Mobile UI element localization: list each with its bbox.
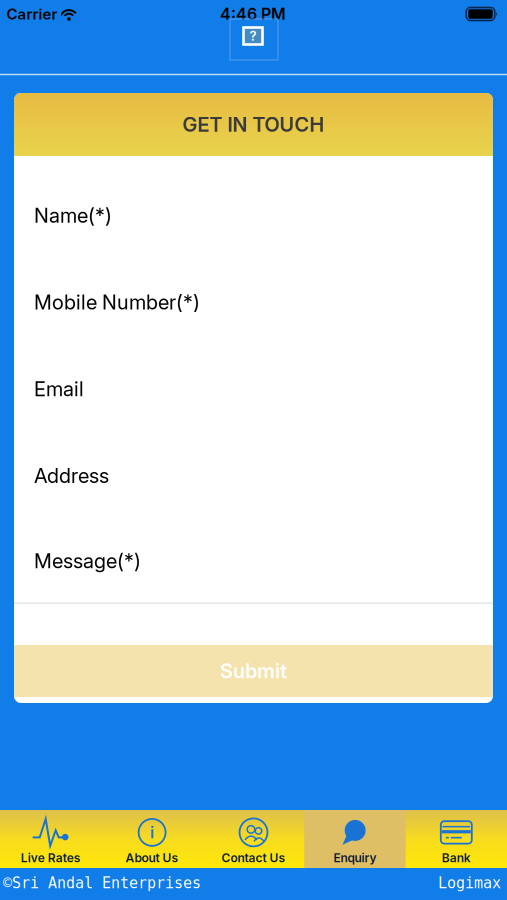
- staticText: i: [150, 823, 154, 842]
- staticText: Carrier: [6, 5, 57, 23]
- button[interactable]: Submit: [14, 645, 493, 697]
- staticText: Name(*): [34, 204, 112, 227]
- staticText: Logimax: [438, 874, 501, 891]
- staticText: Mobile Number(*): [34, 290, 200, 314]
- staticText: Live Rates: [21, 851, 81, 865]
- button[interactable]: Mobile Number(*): [14, 259, 493, 346]
- staticText: About Us: [126, 851, 179, 865]
- staticText: Bank: [442, 851, 471, 865]
- staticText: Message(*): [34, 549, 141, 573]
- staticText: ?: [249, 28, 256, 44]
- staticText: Submit: [220, 659, 287, 683]
- button[interactable]: Message(*): [14, 519, 493, 603]
- button[interactable]: Bank: [406, 810, 507, 868]
- staticText: Enquiry: [333, 851, 376, 865]
- staticText: Address: [34, 464, 109, 488]
- staticText: Email: [34, 377, 84, 401]
- button[interactable]: Enquiry: [304, 810, 406, 868]
- staticText: GET IN TOUCH: [182, 113, 324, 136]
- button[interactable]: Contact Us: [203, 810, 304, 868]
- staticText: ©Sri Andal Enterprises: [3, 874, 201, 891]
- button[interactable]: Email: [14, 346, 493, 432]
- staticText: Contact Us: [221, 851, 285, 865]
- button[interactable]: Name(*): [14, 172, 493, 259]
- staticText: 4:46 PM: [220, 5, 286, 23]
- button[interactable]: Live Rates: [0, 810, 101, 868]
- button[interactable]: i: [101, 810, 203, 868]
- button[interactable]: Address: [14, 432, 493, 519]
